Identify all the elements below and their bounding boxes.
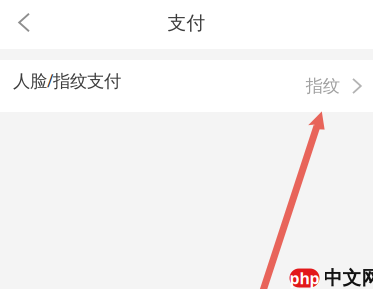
staticText: 人脸/指纹支付: [13, 69, 121, 92]
button[interactable]: Back: [0, 0, 41, 49]
staticText: 支付: [167, 11, 205, 34]
staticText: 中文网: [323, 266, 373, 289]
button[interactable]: 人脸/指纹支付: [0, 60, 373, 112]
staticText: 指纹: [306, 75, 340, 97]
staticText: php: [289, 267, 319, 289]
